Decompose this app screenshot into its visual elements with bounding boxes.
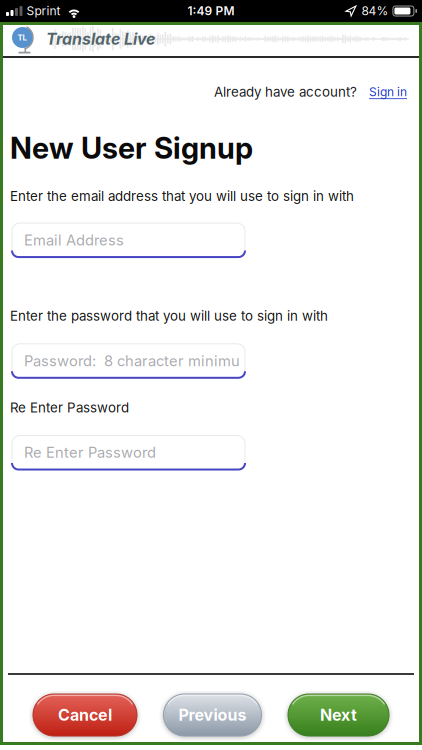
staticText: TL [17, 33, 27, 42]
staticText: Next [320, 706, 357, 724]
staticText: Password: 8 character minimu [24, 352, 240, 369]
staticText: Re Enter Password [10, 400, 129, 415]
staticText: Re Enter Password [24, 444, 156, 461]
staticText: Enter the password that you will use to … [10, 308, 328, 324]
staticText: Sprint [26, 4, 60, 18]
staticText: Translate Live [46, 30, 155, 48]
staticText: 84% [361, 4, 388, 18]
staticText: Email Address [24, 231, 124, 249]
staticText: Sign in [369, 85, 407, 99]
staticText: Enter the email address that you will us… [10, 188, 354, 204]
staticText: Already have account? [214, 84, 357, 100]
staticText: Cancel [58, 706, 112, 724]
staticText: New User Signup [10, 131, 253, 165]
staticText: Previous [178, 706, 246, 724]
staticText: 1:49 PM [187, 4, 234, 18]
